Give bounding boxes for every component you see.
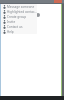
staticText: Invite: [7, 20, 16, 24]
button[interactable]: New conversation: [36, 13, 40, 17]
staticText: Message someone: [7, 5, 35, 9]
button[interactable]: Contact us: [1, 24, 37, 29]
staticText: Help: [7, 30, 14, 34]
button[interactable]: Create group: [1, 14, 37, 19]
staticText: Create group: [7, 15, 27, 19]
staticText: Highlighted contacts: [7, 10, 37, 14]
staticText: Contact us: [7, 25, 23, 29]
button[interactable]: Highlighted contacts: [1, 9, 37, 14]
button[interactable]: Message someone: [1, 4, 37, 9]
button[interactable]: Invite: [1, 19, 37, 24]
button[interactable]: Help: [1, 29, 37, 34]
